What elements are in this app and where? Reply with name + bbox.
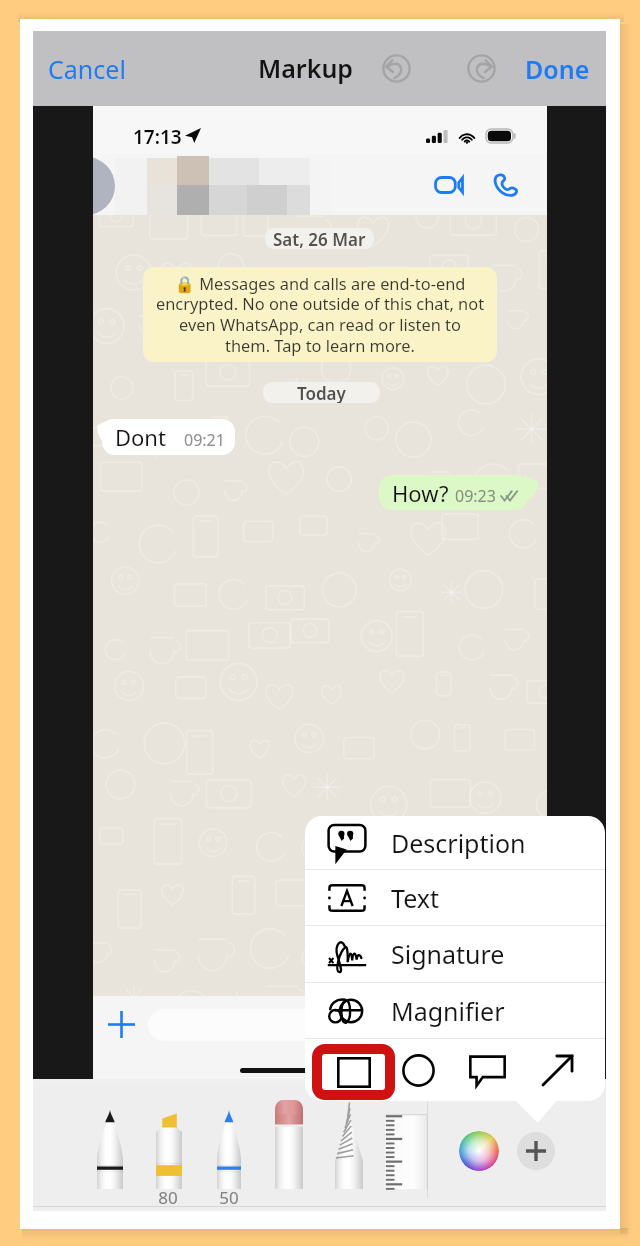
button[interactable]: Add tool <box>517 1132 555 1170</box>
button[interactable]: Voice call <box>483 162 527 208</box>
staticText: Cancel <box>48 52 126 86</box>
button[interactable]: Speech bubble <box>454 1039 520 1101</box>
staticText: Sat, 26 Mar <box>273 228 366 249</box>
button[interactable]: Undo <box>374 46 418 90</box>
button[interactable]: Cancel <box>42 44 132 94</box>
staticText: 09:23 <box>455 485 496 507</box>
staticText: 50 <box>217 1186 241 1209</box>
button[interactable]: Rectangle <box>312 1044 395 1100</box>
staticText: Description <box>391 826 526 860</box>
button[interactable]: Pencil <box>335 1115 363 1189</box>
staticText: Markup <box>258 51 354 85</box>
button[interactable]: Text <box>305 870 605 925</box>
button[interactable]: Eraser <box>275 1100 303 1189</box>
staticText: 17:13 <box>133 124 182 150</box>
button[interactable]: Arrow <box>524 1039 590 1101</box>
button[interactable]: Pen <box>97 1110 123 1189</box>
button[interactable]: Ruler <box>385 1114 428 1189</box>
staticText: Dont <box>115 422 166 452</box>
button[interactable]: Video call <box>427 162 471 208</box>
button[interactable]: Highlighter <box>156 1112 182 1189</box>
staticText: Text <box>391 881 440 915</box>
staticText: Done <box>525 52 590 86</box>
button[interactable]: Description <box>305 816 605 869</box>
button[interactable]: Circle <box>385 1039 451 1101</box>
staticText: Signature <box>391 937 505 971</box>
staticText: Magnifier <box>391 994 505 1028</box>
button[interactable]: Done <box>519 44 596 94</box>
button[interactable]: Magnifier <box>305 983 605 1038</box>
staticText: Today <box>297 382 346 403</box>
staticText: How? <box>392 478 449 508</box>
button[interactable]: Signature <box>305 926 605 982</box>
staticText: 🔒 Messages and calls are end-to-end encr… <box>155 272 485 357</box>
button[interactable]: Color picker <box>459 1131 499 1171</box>
button[interactable]: Redo <box>459 46 503 90</box>
staticText: 80 <box>156 1186 180 1209</box>
button[interactable]: Blue pen <box>217 1110 241 1189</box>
staticText: 09:21 <box>184 429 225 451</box>
